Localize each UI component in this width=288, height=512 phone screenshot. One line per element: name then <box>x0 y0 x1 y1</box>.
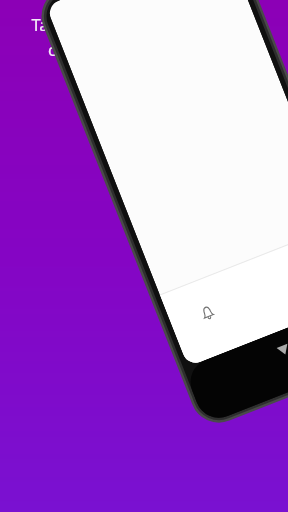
staticText: Takes quick notes and lists to organise … <box>10 13 278 61</box>
button[interactable]: Phone preview of the app <box>0 0 288 512</box>
